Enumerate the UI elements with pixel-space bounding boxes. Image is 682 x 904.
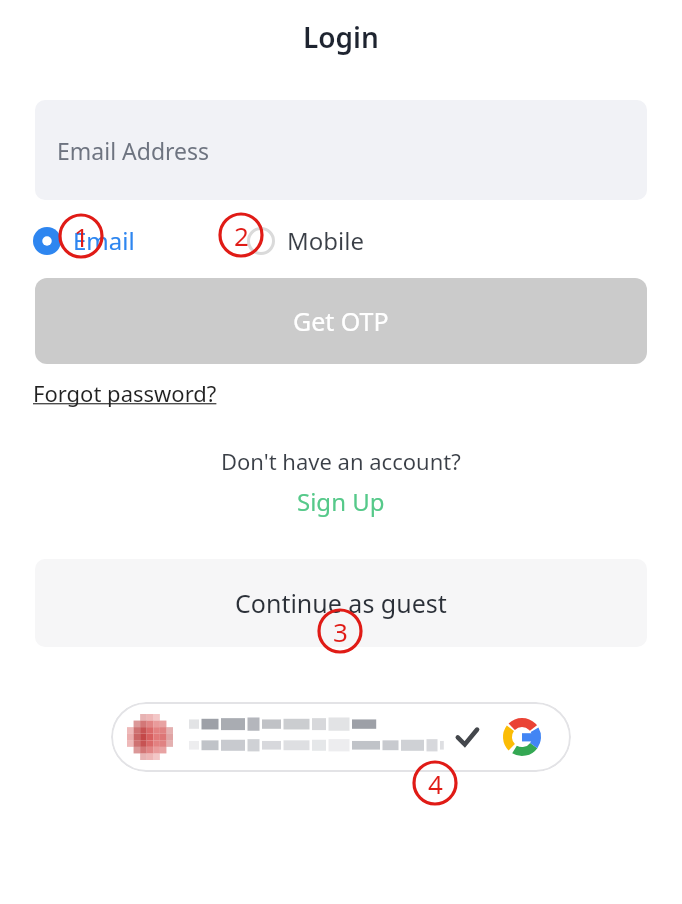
button[interactable]: Sign Up	[297, 485, 385, 518]
staticText: 1	[74, 219, 89, 254]
staticText: Email	[73, 224, 135, 257]
staticText: 4	[428, 766, 443, 801]
button[interactable]: Get OTP	[35, 278, 647, 364]
button[interactable]: Mobile	[247, 224, 364, 257]
button[interactable]: Sign in with Google	[111, 702, 571, 772]
button[interactable]: Email	[33, 224, 135, 257]
button[interactable]: Email Address	[35, 100, 647, 200]
staticText: Don't have an account?	[221, 446, 461, 476]
button[interactable]: Continue as guest	[35, 559, 647, 647]
staticText: Forgot password?	[33, 378, 217, 408]
staticText: Email Address	[57, 135, 210, 166]
staticText: Sign Up	[297, 485, 385, 518]
staticText: 2	[234, 218, 249, 253]
staticText: 3	[333, 614, 348, 649]
staticText: Mobile	[287, 224, 364, 257]
staticText: Login	[303, 18, 379, 56]
button[interactable]: Forgot password?	[33, 378, 217, 408]
staticText: Continue as guest	[235, 586, 447, 620]
staticText: Get OTP	[293, 304, 389, 338]
